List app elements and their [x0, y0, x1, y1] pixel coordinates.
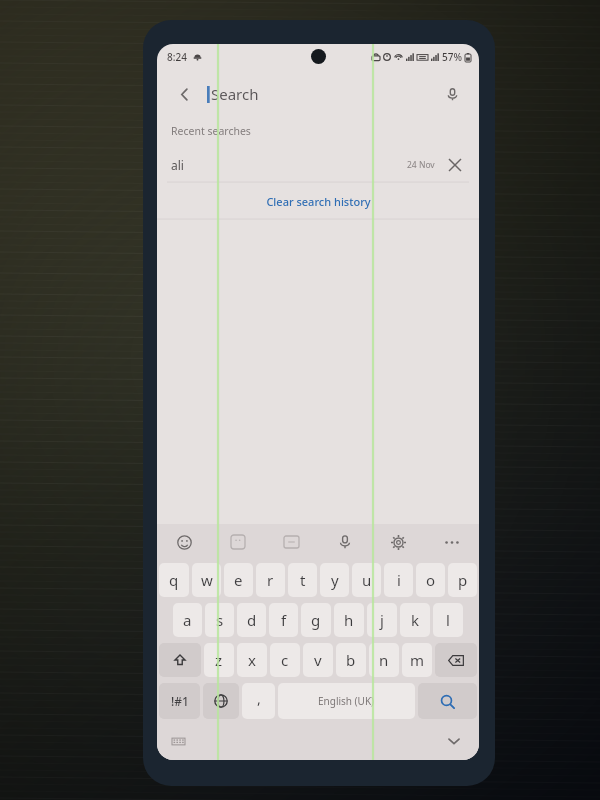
staticText: x — [248, 650, 256, 670]
button[interactable]: n — [369, 643, 399, 677]
button[interactable]: g — [301, 603, 331, 637]
button[interactable]: Voice search — [435, 77, 469, 111]
staticText: z — [215, 650, 223, 670]
button[interactable]: k — [400, 603, 430, 637]
button[interactable]: j — [367, 603, 397, 637]
staticText: j — [380, 610, 384, 630]
staticText: Clear search history — [266, 194, 371, 209]
staticText: t — [300, 570, 306, 590]
staticText: r — [267, 570, 274, 590]
button[interactable]: c — [270, 643, 300, 677]
button[interactable]: Remove — [445, 155, 465, 175]
button[interactable]: English (UK) — [278, 683, 415, 719]
button[interactable]: o — [416, 563, 445, 597]
button[interactable]: , — [242, 683, 275, 719]
staticText: 57% — [442, 50, 462, 64]
button[interactable]: u — [352, 563, 381, 597]
staticText: 24 Nov — [407, 159, 435, 171]
staticText: k — [411, 610, 420, 630]
button[interactable]: Voice input — [330, 527, 360, 557]
button[interactable]: e — [224, 563, 253, 597]
staticText: !#1 — [171, 693, 189, 709]
button[interactable]: Backspace — [435, 643, 477, 677]
button[interactable]: Stickers — [223, 527, 253, 557]
staticText: v — [314, 650, 322, 670]
button[interactable]: More options — [437, 527, 467, 557]
staticText: q — [169, 570, 179, 590]
staticText: c — [281, 650, 289, 670]
button[interactable]: p — [448, 563, 477, 597]
staticText: i — [397, 570, 401, 590]
staticText: h — [344, 610, 354, 630]
button[interactable]: Change language — [203, 683, 239, 719]
staticText: o — [426, 570, 436, 590]
button[interactable]: x — [237, 643, 267, 677]
staticText: English (UK) — [318, 694, 375, 708]
button[interactable]: Settings — [383, 527, 413, 557]
button[interactable]: Search — [418, 683, 477, 719]
staticText: 8:24 — [167, 50, 187, 64]
button[interactable]: Shift — [159, 643, 201, 677]
button[interactable]: Back — [167, 77, 201, 111]
button[interactable]: w — [192, 563, 221, 597]
button[interactable]: Search — [207, 84, 435, 104]
staticText: , — [257, 689, 261, 708]
button[interactable]: r — [256, 563, 285, 597]
staticText: w — [201, 570, 213, 590]
button[interactable]: Hide keyboard — [441, 728, 467, 754]
button[interactable]: f — [269, 603, 298, 637]
button[interactable]: v — [303, 643, 333, 677]
staticText: e — [234, 570, 243, 590]
staticText: s — [216, 610, 224, 630]
staticText: Search — [211, 84, 259, 104]
button[interactable]: s — [205, 603, 234, 637]
button[interactable]: Emoji — [169, 527, 199, 557]
button[interactable]: t — [288, 563, 317, 597]
staticText: ali — [171, 157, 184, 173]
button[interactable]: y — [320, 563, 349, 597]
staticText: n — [379, 650, 389, 670]
staticText: p — [458, 570, 468, 590]
button[interactable]: q — [159, 563, 189, 597]
button[interactable]: d — [237, 603, 266, 637]
staticText: a — [183, 610, 192, 630]
staticText: y — [331, 570, 339, 590]
button[interactable]: Keyboard layout — [167, 730, 189, 752]
staticText: g — [311, 610, 321, 630]
staticText: m — [410, 650, 425, 670]
staticText: f — [281, 610, 287, 630]
staticText: b — [346, 650, 356, 670]
staticText: Recent searches — [171, 124, 251, 138]
button[interactable]: i — [384, 563, 413, 597]
button[interactable]: GIF — [276, 527, 306, 557]
staticText: u — [362, 570, 372, 590]
staticText: d — [247, 610, 257, 630]
staticText: l — [446, 610, 450, 630]
button[interactable]: h — [334, 603, 364, 637]
button[interactable]: a — [173, 603, 202, 637]
button[interactable]: b — [336, 643, 366, 677]
button[interactable]: m — [402, 643, 432, 677]
button[interactable]: z — [204, 643, 234, 677]
button[interactable]: l — [433, 603, 463, 637]
button[interactable]: ali — [157, 148, 479, 182]
button[interactable]: Clear search history — [157, 183, 479, 219]
button[interactable]: !#1 — [159, 683, 200, 719]
